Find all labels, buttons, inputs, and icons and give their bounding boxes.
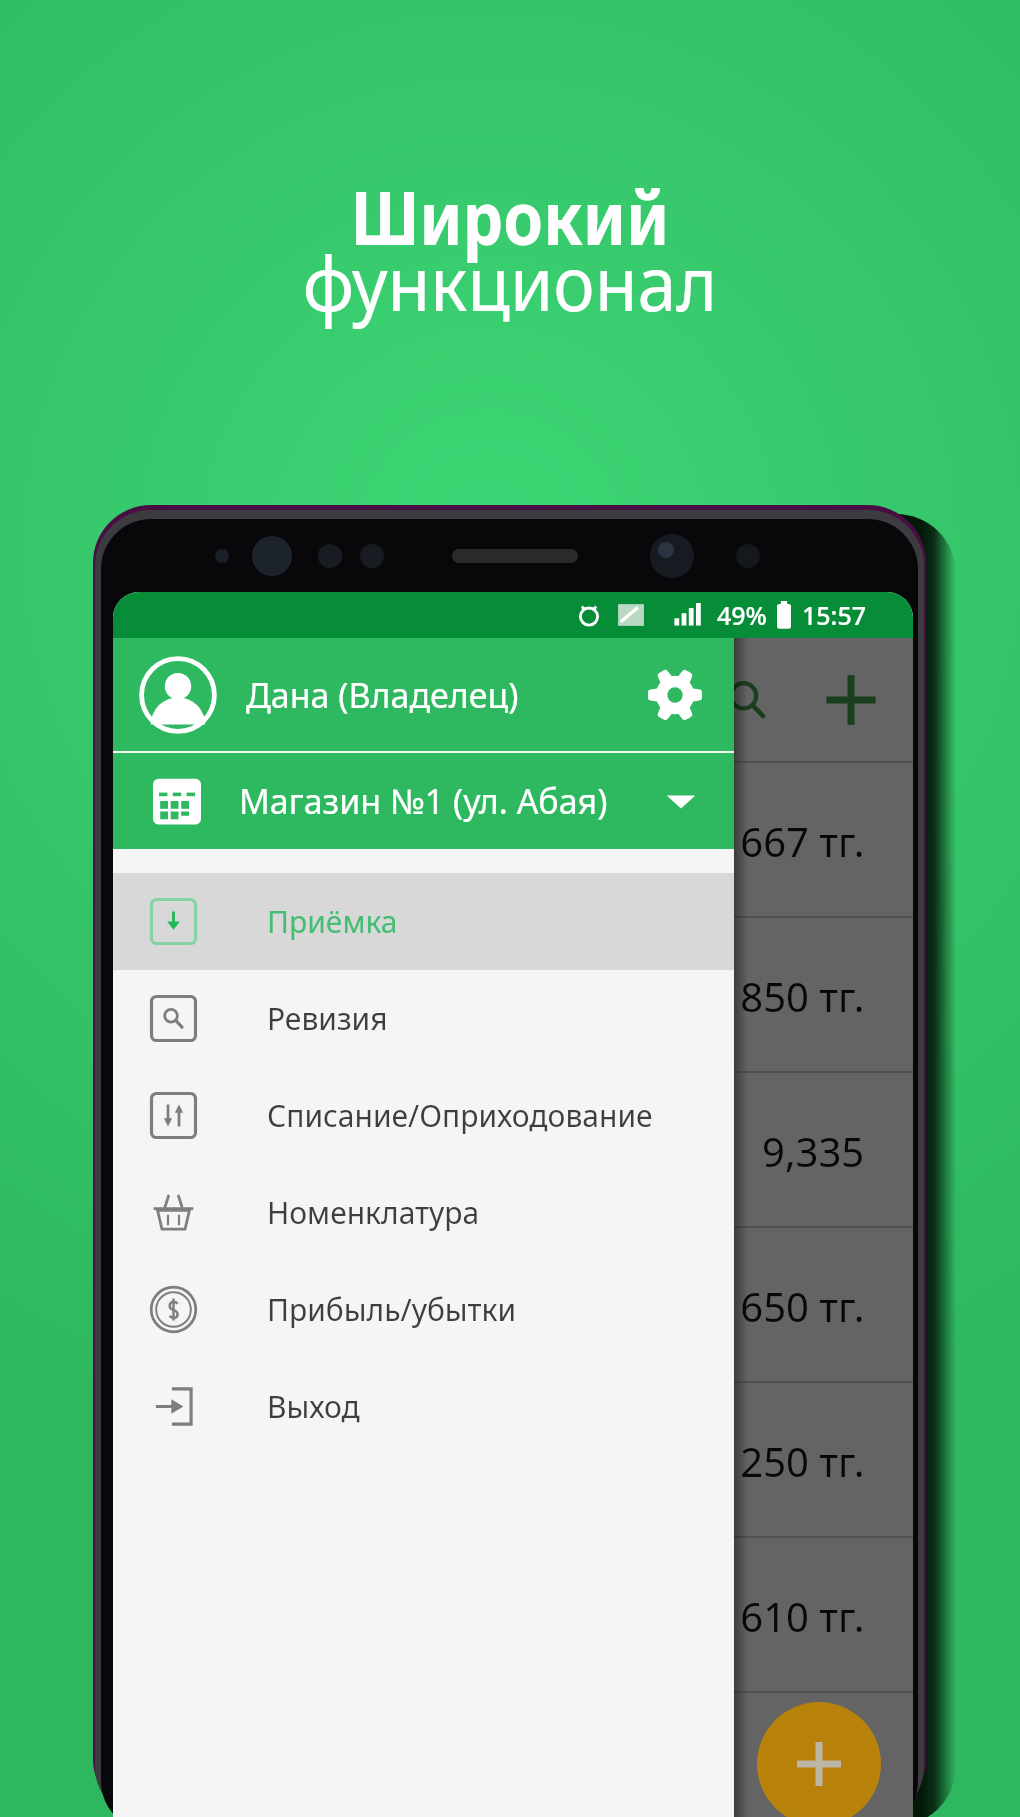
staticText: 1 667 тг.: [707, 814, 865, 868]
button[interactable]: Ревизия: [113, 970, 734, 1067]
button[interactable]: Списание/Оприходование: [113, 1067, 734, 1164]
button[interactable]: Дана (Владелец): [113, 638, 734, 751]
button[interactable]: Add item: [757, 1702, 881, 1817]
staticText: Списание/Оприходование: [267, 1095, 653, 1136]
button[interactable]: 3 650 тг.: [113, 1228, 913, 1383]
staticText: Приёмка: [267, 901, 398, 942]
staticText: Номенклатура: [267, 1192, 480, 1233]
staticText: функционал: [303, 232, 717, 333]
button[interactable]: Магазин №1 (ул. Абая): [113, 753, 734, 849]
button[interactable]: Номенклатура: [113, 1164, 734, 1261]
button[interactable]: Expand: [656, 776, 706, 826]
staticText: 4 250 тг.: [707, 1434, 865, 1488]
staticText: 1 610 тг.: [707, 1589, 865, 1643]
staticText: Ревизия: [267, 998, 388, 1039]
button[interactable]: Add: [811, 660, 891, 740]
staticText: 9,335: [762, 1124, 865, 1178]
button[interactable]: Прибыль/убытки: [113, 1261, 734, 1358]
button[interactable]: 1 667 тг.: [113, 763, 913, 918]
button[interactable]: Выход: [113, 1358, 734, 1455]
staticText: Дана (Владелец): [246, 672, 519, 718]
staticText: Выход: [267, 1386, 360, 1427]
button[interactable]: Search: [707, 660, 787, 740]
staticText: 3 650 тг.: [707, 1279, 865, 1333]
staticText: Магазин №1 (ул. Абая): [239, 778, 608, 824]
button[interactable]: 2 850 тг.: [113, 918, 913, 1073]
button[interactable]: Settings: [640, 660, 710, 730]
staticText: 2 850 тг.: [707, 969, 865, 1023]
staticText: Широкий: [350, 166, 670, 267]
button[interactable]: Приёмка: [113, 873, 734, 970]
staticText: 15:57: [802, 598, 867, 632]
button[interactable]: 4 250 тг.: [113, 1383, 913, 1538]
button[interactable]: 9,335: [113, 1073, 913, 1228]
staticText: 49%: [717, 598, 767, 632]
staticText: Прибыль/убытки: [267, 1289, 517, 1330]
button[interactable]: 1 610 тг.: [113, 1538, 913, 1693]
